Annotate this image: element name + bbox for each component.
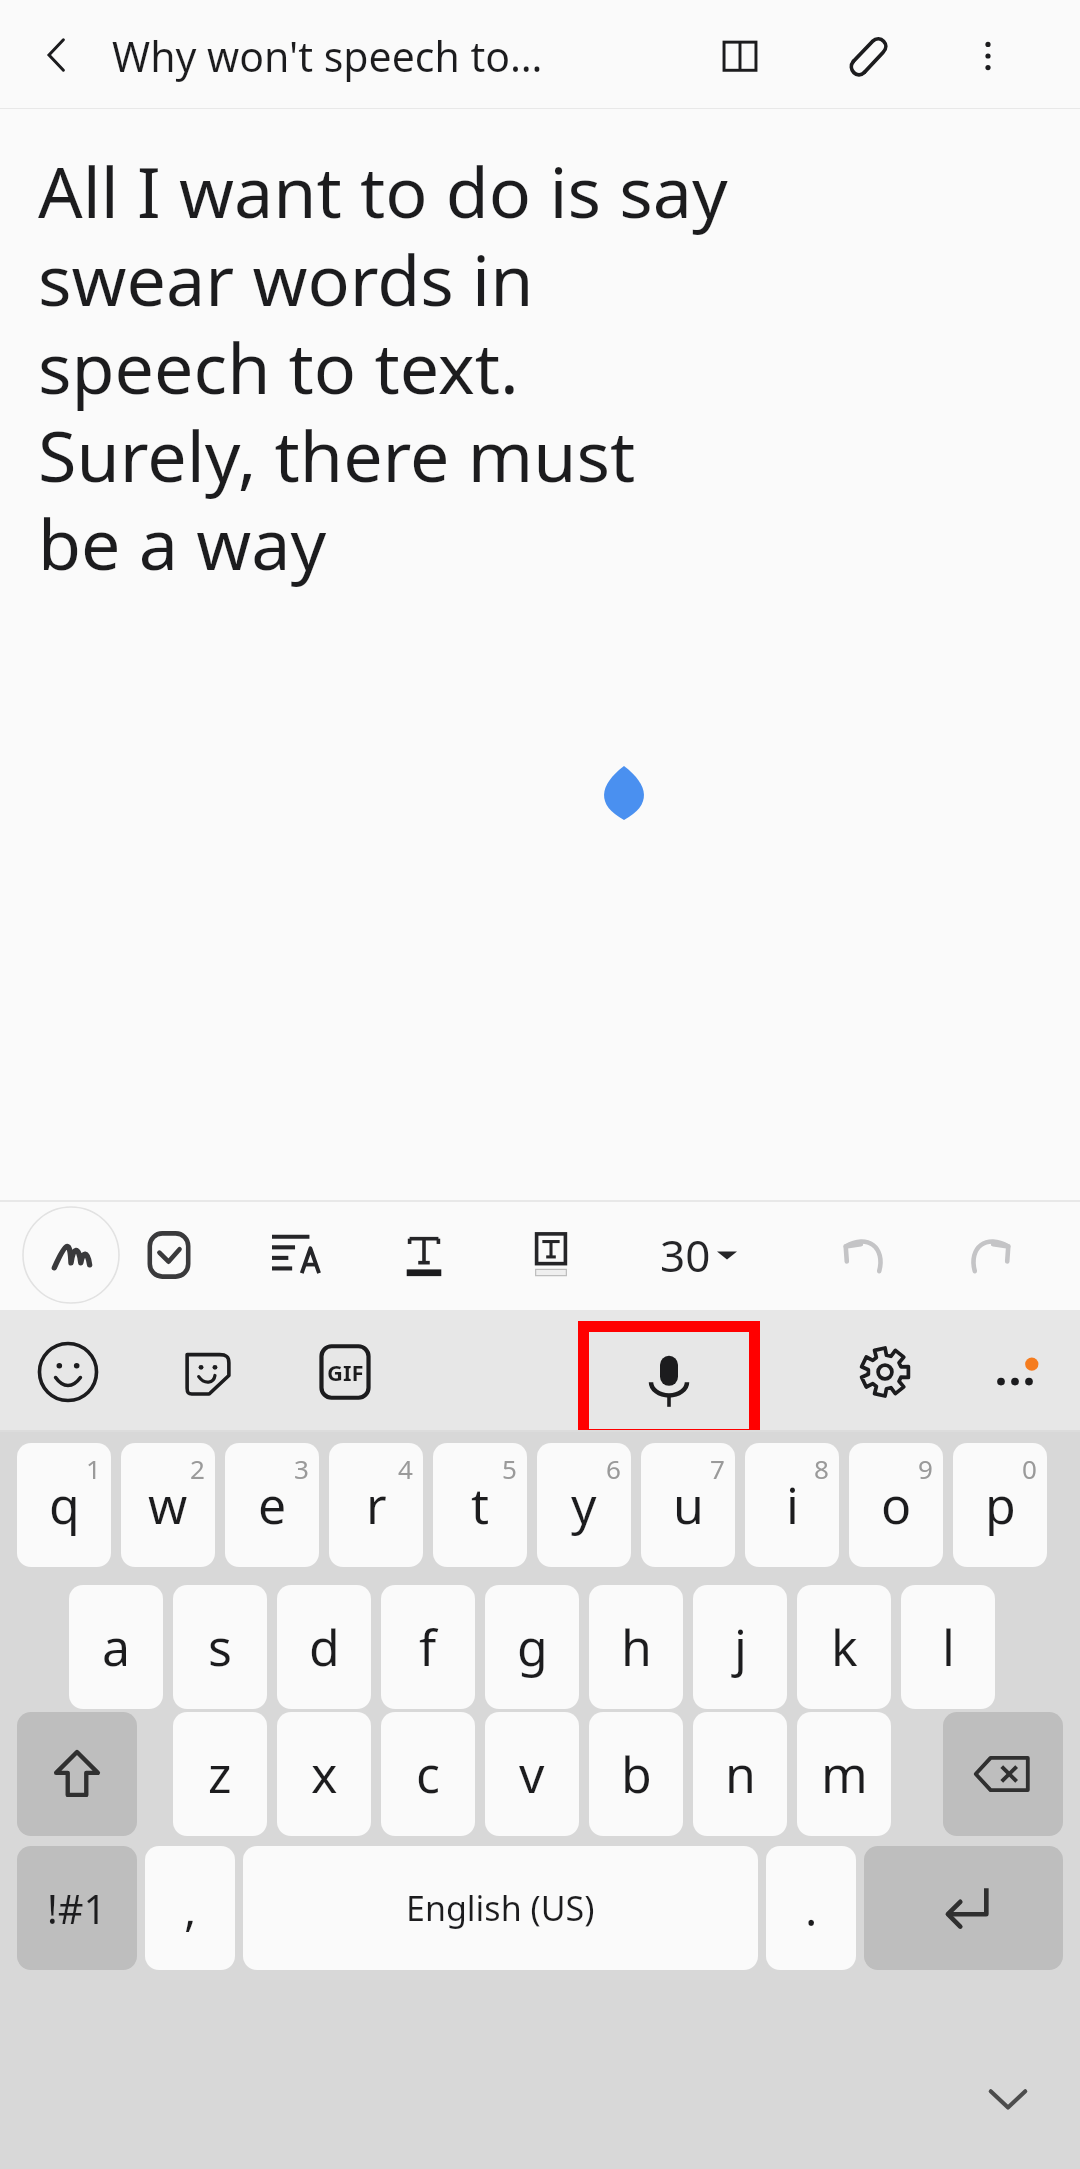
staticText: 4 (398, 1451, 413, 1486)
button[interactable]: s (173, 1585, 267, 1709)
staticText: n (725, 1740, 756, 1808)
button[interactable]: n (693, 1712, 787, 1836)
button[interactable]: Hide keyboard (972, 2062, 1044, 2134)
button[interactable]: !#1 (17, 1846, 137, 1970)
button[interactable]: Keyboard tool (28, 1332, 108, 1412)
staticText: 8 (814, 1451, 829, 1486)
button[interactable]: v (485, 1712, 579, 1836)
button[interactable]: t (433, 1443, 527, 1567)
button[interactable]: u (641, 1443, 735, 1567)
button[interactable]: . (766, 1846, 856, 1970)
staticText: s (208, 1613, 232, 1681)
button[interactable]: y (537, 1443, 631, 1567)
button[interactable]: Format (510, 1214, 592, 1296)
button[interactable]: w (121, 1443, 215, 1567)
staticText: x (311, 1740, 338, 1808)
button[interactable]: Reading view (710, 26, 770, 86)
button[interactable]: Why won't speech to… (112, 28, 543, 84)
button[interactable]: Keyboard tool (305, 1332, 385, 1412)
button[interactable]: r (329, 1443, 423, 1567)
staticText: z (208, 1740, 232, 1808)
staticText: o (881, 1471, 912, 1539)
staticText: l (942, 1613, 955, 1681)
button[interactable]: o (849, 1443, 943, 1567)
button[interactable]: a (69, 1585, 163, 1709)
button[interactable]: p (953, 1443, 1047, 1567)
staticText: h (621, 1613, 652, 1681)
button[interactable]: All I want to do is say swear words in s… (38, 143, 728, 591)
staticText: 2 (190, 1451, 205, 1486)
button[interactable]: More keyboard options (975, 1336, 1055, 1416)
staticText: q (49, 1471, 80, 1539)
button[interactable]: , (145, 1846, 235, 1970)
staticText: . (805, 1877, 818, 1940)
staticText: English (US) (406, 1885, 595, 1931)
button[interactable]: Format (255, 1214, 337, 1296)
button[interactable]: More options (958, 26, 1018, 86)
staticText: a (102, 1613, 131, 1681)
button[interactable]: Back (28, 26, 86, 84)
button[interactable]: Handwriting (22, 1206, 120, 1304)
button[interactable]: f (381, 1585, 475, 1709)
button[interactable]: m (797, 1712, 891, 1836)
staticText: 6 (606, 1451, 621, 1486)
button[interactable]: j (693, 1585, 787, 1709)
staticText: j (734, 1613, 747, 1681)
button[interactable]: i (745, 1443, 839, 1567)
staticText: y (571, 1471, 597, 1539)
button[interactable]: h (589, 1585, 683, 1709)
staticText: m (821, 1740, 868, 1808)
button[interactable]: Keyboard tool (845, 1332, 925, 1412)
staticText: 30 (660, 1225, 711, 1285)
staticText: 7 (710, 1451, 725, 1486)
staticText: e (258, 1471, 287, 1539)
staticText: g (517, 1613, 548, 1681)
button[interactable]: d (277, 1585, 371, 1709)
button[interactable]: c (381, 1712, 475, 1836)
staticText: v (519, 1740, 545, 1808)
button[interactable]: b (589, 1712, 683, 1836)
button[interactable]: Format (383, 1214, 465, 1296)
staticText: GIF (327, 1357, 364, 1387)
button[interactable]: Format (822, 1214, 904, 1296)
button[interactable]: e (225, 1443, 319, 1567)
staticText: 5 (502, 1451, 517, 1486)
staticText: 9 (918, 1451, 933, 1486)
button[interactable]: 30 (660, 1222, 737, 1288)
staticText: t (471, 1471, 490, 1539)
staticText: !#1 (47, 1881, 107, 1935)
staticText: , (184, 1877, 197, 1940)
staticText: d (309, 1613, 340, 1681)
button[interactable]: Keyboard tool (168, 1332, 248, 1412)
button[interactable]: Voice input (589, 1332, 749, 1429)
staticText: b (621, 1740, 652, 1808)
staticText: w (148, 1471, 188, 1539)
staticText: r (366, 1471, 387, 1539)
staticText: k (831, 1613, 858, 1681)
staticText: p (985, 1471, 1016, 1539)
staticText: u (673, 1471, 704, 1539)
staticText: 1 (86, 1451, 101, 1486)
button[interactable]: Backspace (943, 1712, 1063, 1836)
staticText: 0 (1022, 1451, 1037, 1486)
button[interactable]: q (17, 1443, 111, 1567)
staticText: i (786, 1471, 799, 1539)
button[interactable]: Shift (17, 1712, 137, 1836)
staticText: f (419, 1613, 437, 1681)
button[interactable]: Enter (864, 1846, 1063, 1970)
button[interactable]: Attach (838, 26, 898, 86)
button[interactable]: l (901, 1585, 995, 1709)
button[interactable]: Format (950, 1214, 1032, 1296)
button[interactable]: x (277, 1712, 371, 1836)
button[interactable]: g (485, 1585, 579, 1709)
staticText: c (416, 1740, 440, 1808)
button[interactable]: English (US) (243, 1846, 758, 1970)
button[interactable]: k (797, 1585, 891, 1709)
staticText: 3 (294, 1451, 309, 1486)
button[interactable]: z (173, 1712, 267, 1836)
button[interactable]: Format (128, 1214, 210, 1296)
